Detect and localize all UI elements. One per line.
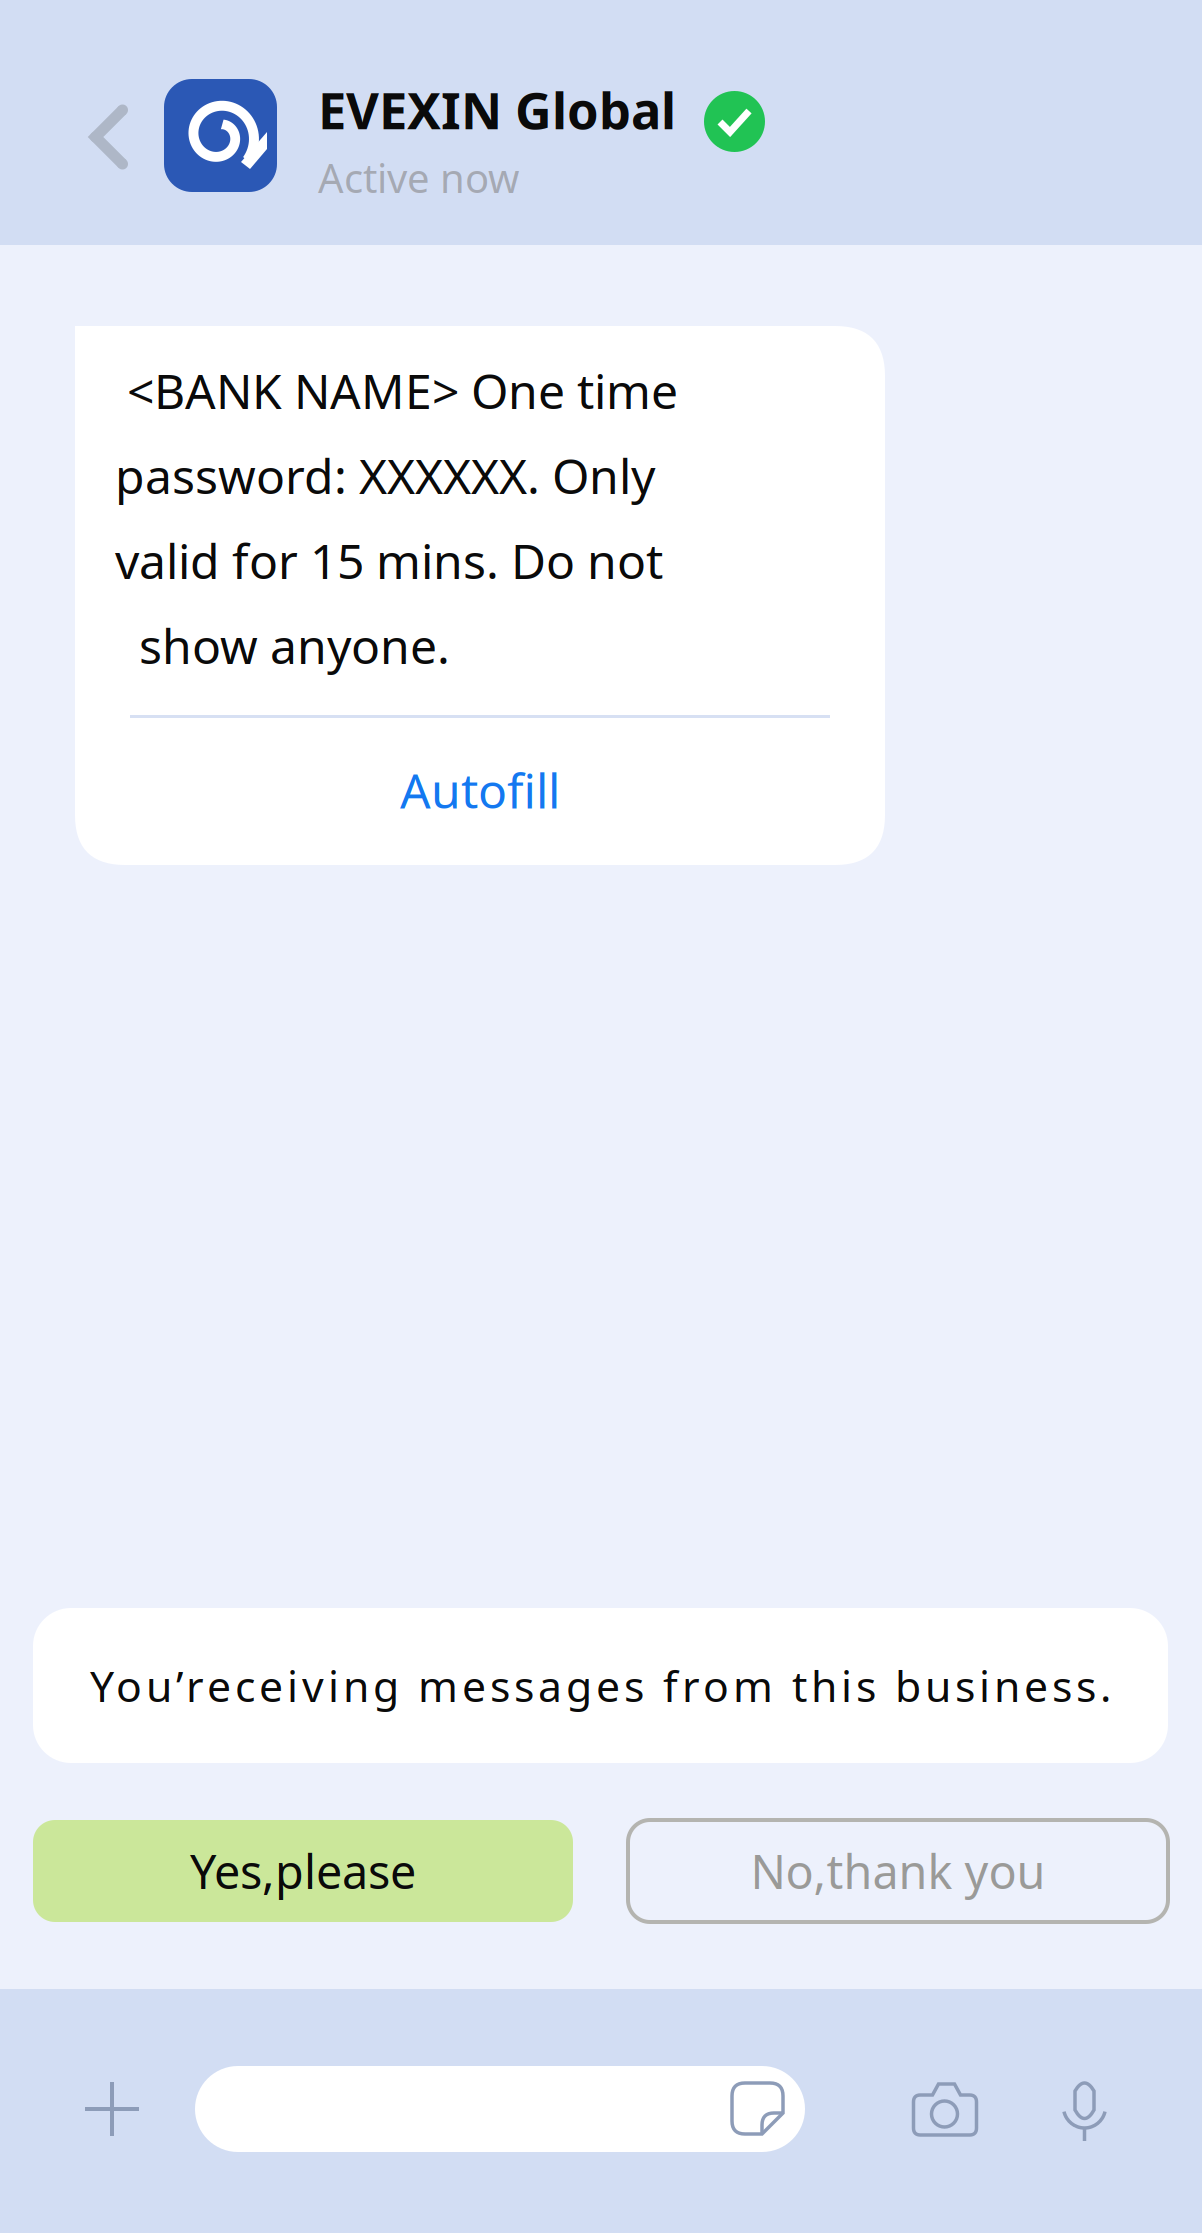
button[interactable]: No,thank you bbox=[628, 1820, 1168, 1922]
staticText: EVEXIN Global bbox=[318, 76, 676, 143]
button[interactable]: Autofill bbox=[75, 715, 885, 865]
staticText: <BANK NAME> One time bbox=[115, 359, 678, 422]
button[interactable]: Message bbox=[195, 2066, 805, 2152]
button[interactable]: EVEXIN Global bbox=[164, 79, 804, 209]
button[interactable]: Add attachment bbox=[52, 2049, 172, 2169]
button[interactable]: Yes,please bbox=[33, 1820, 573, 1922]
staticText: No,thank you bbox=[750, 1840, 1045, 1902]
staticText: password: XXXXXX. Only bbox=[115, 444, 655, 507]
staticText: valid for 15 mins. Do not bbox=[115, 529, 663, 592]
staticText: Active now bbox=[318, 151, 519, 204]
staticText: You’receiving messages from this busines… bbox=[90, 1657, 1111, 1714]
button[interactable]: Voice message bbox=[1025, 2048, 1145, 2168]
staticText: Yes,please bbox=[190, 1840, 416, 1902]
staticText: Autofill bbox=[400, 758, 560, 822]
button[interactable]: Camera bbox=[880, 2048, 1010, 2168]
staticText: show anyone. bbox=[115, 614, 450, 677]
button[interactable]: Back bbox=[60, 78, 156, 196]
